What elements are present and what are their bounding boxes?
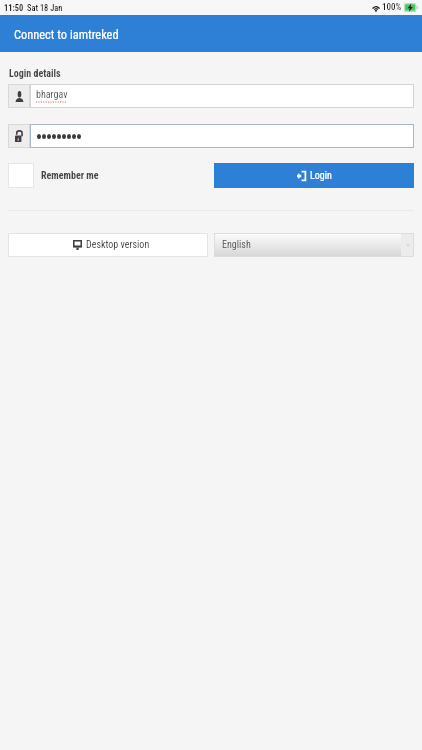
button[interactable]: Remember me — [8, 163, 99, 188]
button[interactable]: Login — [214, 163, 414, 188]
staticText: Login — [310, 170, 332, 182]
other: Password — [8, 124, 30, 148]
staticText: Login details — [9, 68, 61, 80]
other: Username — [8, 84, 30, 108]
button[interactable]: Desktop version — [8, 233, 208, 257]
button[interactable]: English — [214, 233, 414, 257]
staticText: bhargav — [36, 89, 68, 101]
staticText: Sat 18 Jan — [27, 3, 63, 13]
button[interactable]: Connect to iamtreked — [0, 15, 422, 52]
staticText: Desktop version — [86, 239, 150, 251]
staticText: 11:50 — [4, 3, 24, 13]
staticText: Remember me — [41, 170, 99, 182]
staticText: English — [222, 239, 251, 251]
button[interactable]: bhargav — [30, 84, 414, 108]
button[interactable] — [30, 124, 414, 148]
staticText: 100% — [382, 2, 402, 13]
staticText: Connect to iamtreked — [14, 27, 119, 42]
